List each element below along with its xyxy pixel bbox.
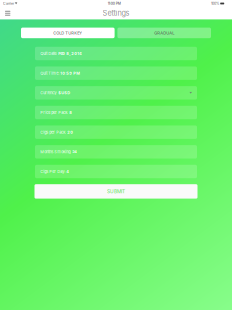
staticText: GRADUAL	[154, 30, 174, 35]
staticText: Currency:	[40, 90, 57, 95]
staticText: 24	[71, 149, 77, 154]
staticText: Carrier	[3, 1, 14, 6]
staticText: Feb 8, 2016	[57, 51, 82, 56]
button[interactable]: Menu	[2, 7, 13, 19]
staticText: Quit Date:	[40, 51, 57, 56]
staticText: Cigs Per Day:	[40, 169, 65, 174]
staticText: Cigs per Pack:	[40, 130, 66, 135]
staticText: Settings	[102, 9, 129, 18]
button[interactable]: GRADUAL	[117, 28, 211, 38]
staticText: 20	[66, 130, 73, 135]
staticText: 10:59 PM	[59, 71, 80, 76]
staticText: Price per Pack:	[40, 110, 68, 115]
button[interactable]: Quit Date:	[35, 47, 197, 60]
button[interactable]: Cigs Per Day:	[35, 165, 197, 178]
staticText: COLD TURKEY	[53, 30, 82, 35]
staticText: 8	[68, 110, 72, 115]
button[interactable]: SUBMIT	[34, 184, 197, 199]
button[interactable]: Price per Pack:	[35, 106, 197, 119]
staticText: Quit Time:	[40, 71, 59, 76]
staticText: $USD	[57, 90, 70, 95]
button[interactable]: Currency:	[35, 86, 197, 99]
button[interactable]: Months Smoking:	[35, 145, 197, 159]
staticText: 100%	[211, 1, 219, 6]
staticText: SUBMIT	[107, 188, 125, 194]
staticText: 11:00 PM	[108, 1, 121, 6]
staticText: Months Smoking:	[40, 149, 71, 154]
button[interactable]: Quit Time:	[35, 66, 197, 80]
staticText: 4	[65, 169, 69, 174]
button[interactable]: Cigs per Pack:	[35, 125, 197, 139]
button[interactable]: COLD TURKEY	[21, 28, 115, 38]
